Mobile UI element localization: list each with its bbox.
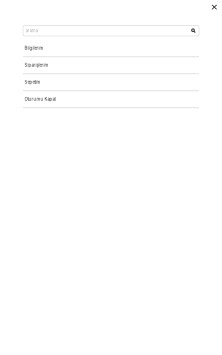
staticText: Bilgilerim [24, 46, 43, 51]
staticText: Sepetim [24, 80, 40, 85]
button[interactable]: Oturumu Kapat [23, 91, 199, 108]
button[interactable]: Siparişlerim [23, 57, 199, 74]
button[interactable]: Bilgilerim [23, 40, 199, 57]
staticText: arama [26, 28, 38, 33]
button[interactable]: Close [209, 2, 220, 13]
button[interactable]: Sepetim [23, 74, 199, 91]
staticText: Siparişlerim [24, 63, 48, 68]
staticText: Oturumu Kapat [24, 97, 55, 102]
button[interactable]: arama [23, 14, 199, 36]
